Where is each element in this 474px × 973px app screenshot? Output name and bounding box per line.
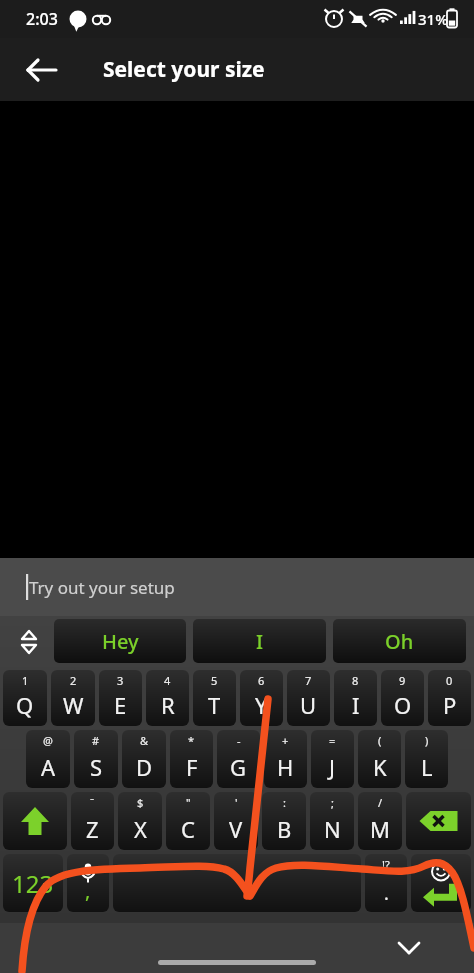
button[interactable]: " xyxy=(166,792,210,850)
staticText: * xyxy=(188,733,195,748)
button[interactable]: I xyxy=(193,619,326,663)
button[interactable]: * xyxy=(170,730,213,788)
button[interactable]: Expand suggestions xyxy=(12,625,46,659)
staticText: V xyxy=(229,814,243,844)
staticText: H xyxy=(277,752,294,782)
staticText: # xyxy=(92,733,100,748)
button[interactable]: + xyxy=(264,730,307,788)
button[interactable]: 4 xyxy=(146,670,189,726)
button[interactable]: = xyxy=(311,730,354,788)
staticText: A xyxy=(41,752,56,782)
button[interactable]: 9 xyxy=(381,670,424,726)
staticText: I xyxy=(256,628,264,655)
staticText: / xyxy=(378,795,383,810)
staticText: !? xyxy=(382,857,390,872)
button[interactable]: 0 xyxy=(428,670,471,726)
staticText: S xyxy=(90,752,103,782)
button[interactable]: & xyxy=(122,730,166,788)
staticText: 0 xyxy=(446,673,453,688)
staticText: R xyxy=(161,690,175,720)
staticText: Y xyxy=(255,690,268,720)
button[interactable]: ; xyxy=(310,792,354,850)
button[interactable]: ( xyxy=(358,730,401,788)
staticText: 6 xyxy=(258,673,265,688)
button[interactable]: # xyxy=(74,730,118,788)
staticText: ( xyxy=(378,733,382,748)
staticText: N xyxy=(324,814,341,844)
staticText: 4 xyxy=(164,673,171,688)
staticText: Try out your setup xyxy=(29,576,175,599)
staticText: 9 xyxy=(399,673,406,688)
button[interactable]: 5 xyxy=(193,670,236,726)
button[interactable]: : xyxy=(262,792,306,850)
staticText: . xyxy=(384,881,389,906)
button[interactable]: 123 xyxy=(3,854,63,912)
staticText: : xyxy=(283,795,286,810)
button[interactable]: ) xyxy=(405,730,448,788)
staticText: & xyxy=(140,733,149,748)
button[interactable]: 2 xyxy=(51,670,95,726)
staticText: ) xyxy=(425,733,429,748)
staticText: Q xyxy=(16,690,34,720)
staticText: = xyxy=(329,733,336,748)
button[interactable]: $ xyxy=(118,792,162,850)
staticText: 2:03 xyxy=(26,8,58,30)
button[interactable]: 3 xyxy=(99,670,142,726)
button[interactable]: Enter xyxy=(411,854,471,912)
staticText: G xyxy=(230,752,247,782)
button[interactable]: 8 xyxy=(334,670,377,726)
button[interactable]: / xyxy=(358,792,402,850)
staticText: 123 xyxy=(12,867,54,900)
staticText: " xyxy=(186,795,191,810)
staticText: @ xyxy=(43,733,53,748)
staticText: 31% xyxy=(418,9,448,29)
staticText: O xyxy=(394,690,412,720)
staticText: K xyxy=(373,752,387,782)
staticText: , xyxy=(85,877,91,904)
staticText: Select your size xyxy=(103,55,265,84)
button[interactable]: Oh xyxy=(333,619,466,663)
staticText: L xyxy=(421,752,433,782)
staticText: 3 xyxy=(117,673,124,688)
button[interactable]: Hey xyxy=(54,619,186,663)
staticText: B xyxy=(277,814,292,844)
staticText: Z xyxy=(86,814,99,844)
staticText: + xyxy=(282,733,289,748)
button[interactable]: 7 xyxy=(287,670,330,726)
button[interactable]: Back xyxy=(26,53,60,87)
button[interactable]: @ xyxy=(26,730,70,788)
staticText: ˉ xyxy=(90,795,95,810)
staticText: 2 xyxy=(70,673,77,688)
staticText: $ xyxy=(137,795,144,810)
staticText: 7 xyxy=(305,673,312,688)
staticText: - xyxy=(237,733,241,748)
staticText: Oh xyxy=(385,628,414,655)
staticText: 5 xyxy=(211,673,218,688)
staticText: J xyxy=(329,752,336,782)
button[interactable]: Space xyxy=(113,854,361,912)
button[interactable]: 6 xyxy=(240,670,283,726)
staticText: 8 xyxy=(352,673,359,688)
button[interactable]: Voice input, comma xyxy=(67,854,109,912)
staticText: P xyxy=(443,690,457,720)
staticText: I xyxy=(352,690,360,720)
button[interactable]: Try out your setup xyxy=(0,558,474,616)
staticText: C xyxy=(181,814,195,844)
button[interactable]: - xyxy=(217,730,260,788)
button[interactable]: Backspace xyxy=(406,792,471,850)
staticText: ' xyxy=(235,795,238,810)
staticText: 1 xyxy=(22,673,29,688)
button[interactable]: !? xyxy=(365,854,407,912)
staticText: W xyxy=(63,690,84,720)
staticText: D xyxy=(136,752,153,782)
button[interactable]: Shift xyxy=(3,792,67,850)
staticText: X xyxy=(134,814,147,844)
staticText: M xyxy=(370,814,390,844)
staticText: ; xyxy=(331,795,334,810)
button[interactable]: 1 xyxy=(3,670,47,726)
button[interactable]: ' xyxy=(214,792,258,850)
button[interactable]: ˉ xyxy=(71,792,114,850)
staticText: E xyxy=(114,690,127,720)
staticText: T xyxy=(208,690,221,720)
button[interactable]: Hide keyboard xyxy=(392,931,426,965)
